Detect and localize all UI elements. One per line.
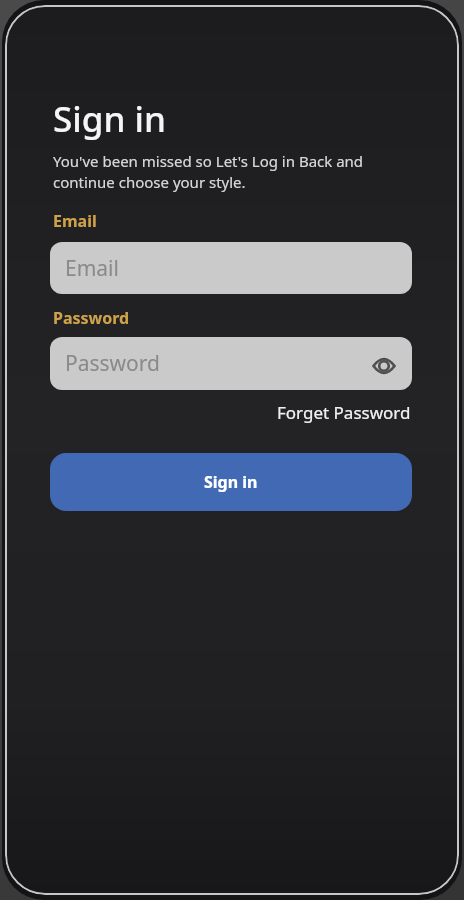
staticText: Sign in xyxy=(53,95,166,143)
staticText: You've been missed so Let's Log in Back … xyxy=(53,151,364,193)
staticText: Password xyxy=(53,307,130,329)
staticText: Password xyxy=(65,349,160,378)
button[interactable]: Email xyxy=(50,242,412,294)
staticText: Email xyxy=(65,254,119,283)
staticText: Email xyxy=(53,210,97,232)
button[interactable]: Sign in xyxy=(50,453,412,511)
staticText: Sign in xyxy=(204,471,258,493)
button[interactable]: Password xyxy=(50,337,412,390)
button[interactable]: Forget Password xyxy=(277,401,411,424)
